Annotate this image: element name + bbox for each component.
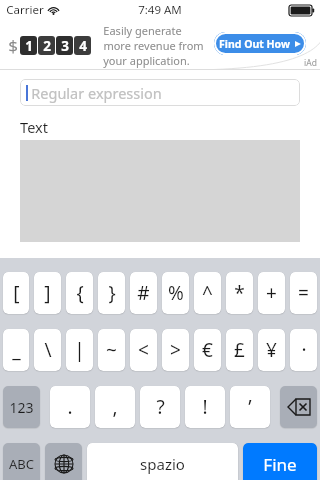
staticText: , (112, 394, 118, 420)
button[interactable]: # (130, 272, 157, 314)
button[interactable]: spazio (87, 443, 238, 480)
button[interactable]: + (258, 272, 285, 314)
button[interactable]: . (50, 386, 90, 428)
staticText: ! (202, 394, 208, 420)
staticText: 7:49 AM (138, 2, 182, 18)
button[interactable]: { (66, 272, 93, 314)
staticText: . (67, 394, 73, 420)
staticText: more revenue from (103, 38, 204, 53)
staticText: ] (44, 280, 51, 306)
staticText: ¥ (266, 337, 277, 363)
button[interactable]: 123 (3, 386, 40, 428)
staticText: · (301, 337, 307, 363)
staticText: { (76, 280, 84, 306)
button[interactable]: ? (140, 386, 180, 428)
button[interactable]: > (162, 329, 189, 371)
staticText: ’ (248, 394, 252, 420)
staticText: % (168, 280, 184, 306)
button[interactable]: ^ (194, 272, 221, 314)
staticText: 1 (25, 37, 33, 55)
staticText: * (234, 280, 245, 306)
staticText: + (266, 280, 277, 306)
button[interactable]: Change keyboard language (45, 443, 82, 480)
button[interactable]: · (290, 329, 317, 371)
staticText: # (137, 280, 150, 306)
staticText: _ (12, 337, 21, 363)
staticText: Find Out How (219, 37, 290, 51)
staticText: > (170, 337, 181, 363)
staticText: ? (156, 394, 165, 420)
button[interactable]: Find Out How (214, 32, 306, 55)
button[interactable]: % (162, 272, 189, 314)
button[interactable]: ~ (98, 329, 125, 371)
staticText: [ (13, 280, 20, 306)
staticText: = (298, 280, 309, 306)
staticText: \ (44, 337, 52, 363)
staticText: 2 (43, 37, 51, 55)
button[interactable]: Fine (243, 443, 317, 480)
staticText: 123 (9, 398, 34, 417)
button[interactable]: ] (34, 272, 61, 314)
button[interactable]: € (194, 329, 221, 371)
staticText: your application. (103, 53, 190, 68)
button[interactable]: | (66, 329, 93, 371)
staticText: < (138, 337, 149, 363)
staticText: £ (234, 337, 245, 363)
button[interactable]: £ (226, 329, 253, 371)
staticText: Text (20, 117, 48, 137)
button[interactable]: _ (3, 329, 29, 371)
staticText: | (74, 337, 85, 363)
staticText: Carrier (6, 2, 44, 18)
staticText: ABC (9, 455, 34, 473)
button[interactable]: ! (185, 386, 225, 428)
staticText: iAd (304, 57, 317, 69)
staticText: Easily generate (103, 23, 182, 38)
button[interactable]: * (226, 272, 253, 314)
staticText: spazio (140, 454, 185, 474)
staticText: 3 (61, 37, 69, 55)
staticText: Regular expression (31, 83, 162, 103)
button[interactable]: ¥ (258, 329, 285, 371)
button[interactable]: Backspace (280, 386, 317, 428)
staticText: ~ (106, 337, 117, 363)
staticText: Fine (263, 453, 297, 476)
button[interactable]: < (130, 329, 157, 371)
button[interactable]: $ (0, 20, 320, 70)
button[interactable]: ABC (3, 443, 40, 480)
staticText: 4 (79, 37, 87, 55)
staticText: } (108, 280, 116, 306)
button[interactable]: [ (3, 272, 29, 314)
staticText: € (202, 337, 213, 363)
button[interactable]: , (95, 386, 135, 428)
button[interactable]: \ (34, 329, 61, 371)
button[interactable]: ’ (230, 386, 270, 428)
button[interactable]: Regular expression (20, 79, 300, 106)
staticText: $ (8, 34, 18, 57)
staticText: ^ (202, 280, 213, 306)
button[interactable]: } (98, 272, 125, 314)
button[interactable]: = (290, 272, 317, 314)
